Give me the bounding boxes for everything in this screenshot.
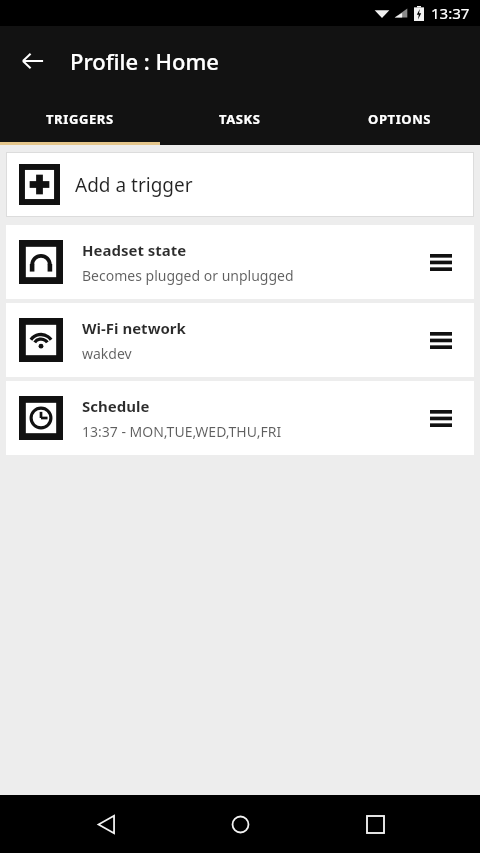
staticText: OPTIONS (368, 110, 432, 128)
staticText: TRIGGERS (46, 110, 114, 128)
button[interactable]: Reorder Headset state (421, 242, 461, 282)
staticText: Becomes plugged or unplugged (82, 266, 294, 285)
button[interactable]: Add a trigger (6, 152, 474, 217)
staticText: wakdev (82, 344, 132, 363)
button[interactable]: Reorder Schedule (421, 398, 461, 438)
button[interactable]: TASKS (160, 96, 320, 142)
staticText: Profile : Home (70, 46, 219, 76)
button[interactable]: Wi-Fi network (6, 303, 474, 377)
staticText: Wi-Fi network (82, 318, 186, 338)
button[interactable]: Recent apps (346, 795, 404, 853)
button[interactable]: Reorder Wi-Fi network (421, 320, 461, 360)
button[interactable]: Back (77, 795, 135, 853)
button[interactable]: Headset state (6, 225, 474, 299)
staticText: Add a trigger (75, 172, 193, 198)
staticText: 13:37 (431, 3, 470, 23)
button[interactable]: Back (10, 38, 56, 84)
staticText: 13:37 - MON,TUE,WED,THU,FRI (82, 422, 282, 441)
button[interactable]: TRIGGERS (0, 96, 160, 142)
staticText: TASKS (219, 110, 261, 128)
staticText: Schedule (82, 396, 150, 416)
staticText: Headset state (82, 240, 187, 260)
button[interactable]: Home (211, 795, 269, 853)
button[interactable]: Schedule (6, 381, 474, 455)
button[interactable]: OPTIONS (320, 96, 480, 142)
